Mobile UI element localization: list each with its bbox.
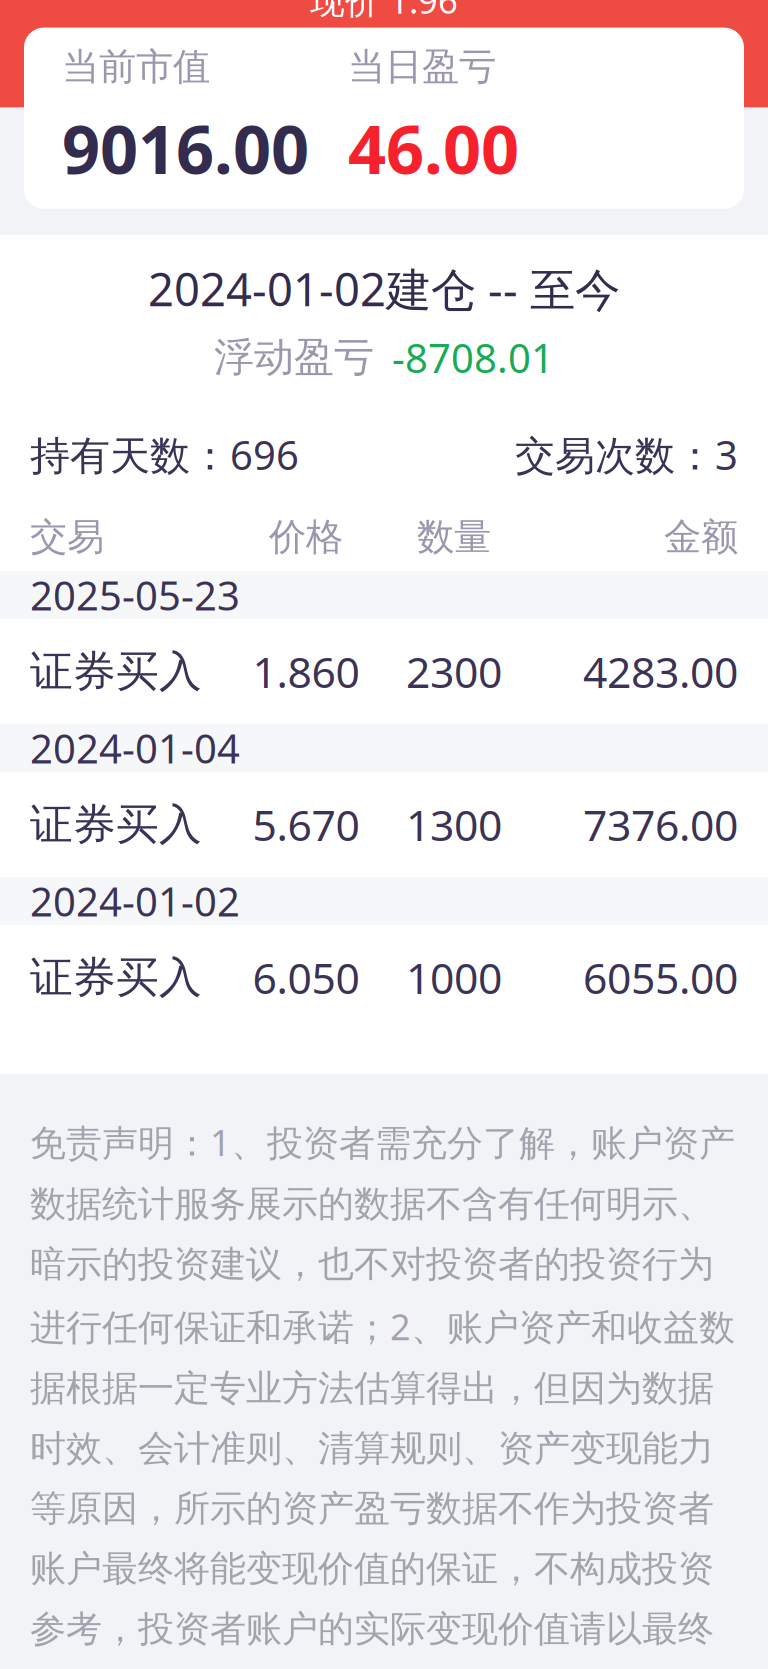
staticText: 2024-01-02 <box>30 874 240 928</box>
button[interactable]: 证券买入 <box>0 619 768 724</box>
staticText: 6055.00 <box>583 949 738 1006</box>
staticText: 6.050 <box>252 949 359 1006</box>
staticText: 交易次数：3 <box>515 428 738 481</box>
staticText: 46.00 <box>348 104 519 192</box>
staticText: 9016.00 <box>62 104 309 192</box>
staticText: 数量 <box>417 514 491 560</box>
staticText: 证券买入 <box>30 951 202 1004</box>
staticText: 2024-01-04 <box>30 721 240 775</box>
staticText: 当日盈亏 <box>348 44 496 90</box>
staticText: 2025-05-23 <box>30 568 240 622</box>
staticText: 价格 <box>269 514 343 560</box>
staticText: 当前市值 <box>62 44 210 90</box>
button[interactable]: 证券买入 <box>0 772 768 877</box>
staticText: 交易 <box>30 514 104 560</box>
staticText: 4283.00 <box>583 643 738 700</box>
staticText: 7376.00 <box>583 796 738 853</box>
button[interactable]: 证券买入 <box>0 925 768 1030</box>
staticText: 5.670 <box>252 796 359 853</box>
staticText: 证券买入 <box>30 645 202 698</box>
staticText: 现价 1.96 <box>310 0 458 23</box>
staticText: 金额 <box>664 514 738 560</box>
staticText: 持有天数：696 <box>30 428 299 481</box>
staticText: 免责声明：1、投资者需充分了解，账户资产数据统计服务展示的数据不含有任何明示、暗… <box>30 1118 735 1669</box>
staticText: 1300 <box>406 796 502 853</box>
staticText: 1000 <box>406 949 502 1006</box>
staticText: 1.860 <box>252 643 359 700</box>
staticText: 2024-01-02建仓 -- 至今 <box>148 259 620 319</box>
staticText: -8708.01 <box>392 331 554 384</box>
staticText: 浮动盈亏 <box>214 333 374 382</box>
staticText: 2300 <box>406 643 502 700</box>
staticText: 证券买入 <box>30 798 202 851</box>
